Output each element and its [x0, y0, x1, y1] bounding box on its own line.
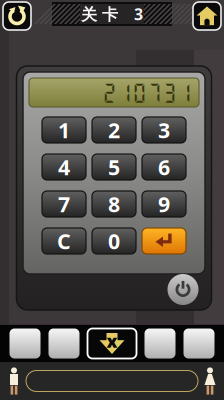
- staticText: 7: [58, 190, 70, 218]
- button[interactable]: 0: [92, 228, 136, 254]
- button[interactable]: 5: [92, 154, 136, 180]
- button[interactable]: 8: [92, 191, 136, 217]
- button[interactable]: 1: [42, 117, 86, 143]
- staticText: 1: [58, 116, 70, 144]
- staticText: 0: [108, 227, 120, 255]
- button[interactable]: 6: [142, 154, 186, 180]
- button[interactable]: Item: marker: [87, 328, 136, 358]
- staticText: 3: [158, 116, 170, 144]
- staticText: 关 卡 3: [81, 3, 143, 25]
- button[interactable]: Enter: [142, 228, 186, 254]
- staticText: 9: [158, 190, 170, 218]
- button[interactable]: Home: [193, 2, 221, 30]
- button[interactable]: 7: [42, 191, 86, 217]
- button[interactable]: Empty item slot: [183, 328, 214, 358]
- button[interactable]: 9: [142, 191, 186, 217]
- staticText: 6: [158, 153, 170, 181]
- button[interactable]: Power: [167, 274, 198, 305]
- staticText: 4: [58, 153, 70, 181]
- button[interactable]: 3: [142, 117, 186, 143]
- button[interactable]: Empty item slot: [144, 328, 175, 358]
- button[interactable]: 2: [92, 117, 136, 143]
- button[interactable]: Empty item slot: [48, 328, 79, 358]
- button[interactable]: Restart level: [3, 2, 31, 30]
- button[interactable]: 4: [42, 154, 86, 180]
- staticText: 2: [108, 116, 120, 144]
- staticText: x: [106, 329, 117, 352]
- staticText: 5: [108, 153, 120, 181]
- staticText: 8: [108, 190, 120, 218]
- button[interactable]: C: [42, 228, 86, 254]
- button[interactable]: Empty item slot: [9, 328, 40, 358]
- staticText: 210731: [102, 80, 192, 105]
- staticText: C: [57, 227, 71, 255]
